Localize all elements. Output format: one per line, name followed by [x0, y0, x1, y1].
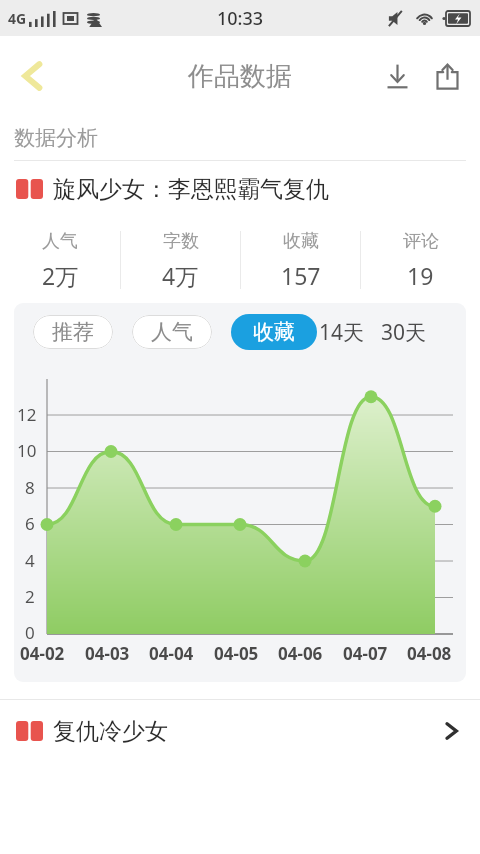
staticText: 0 [25, 621, 35, 644]
staticText: 04-06 [278, 642, 323, 665]
staticText: 04-04 [149, 642, 194, 665]
staticText: 157 [281, 260, 321, 291]
staticText: 10 [17, 439, 37, 462]
staticText: 人气 [151, 319, 193, 345]
staticText: 04-05 [214, 642, 259, 665]
button[interactable]: 复仇冷少女 [0, 700, 480, 762]
staticText: 6 [25, 512, 35, 535]
staticText: 4G [8, 9, 27, 28]
button[interactable]: 旋风少女：李恩熙霸气复仇 [0, 161, 480, 217]
button[interactable]: 人气 [0, 217, 120, 303]
button[interactable]: 推荐 [33, 315, 113, 349]
staticText: 推荐 [52, 319, 94, 345]
button[interactable]: 评论 [361, 217, 480, 303]
button[interactable]: 人气 [132, 315, 212, 349]
button[interactable]: 收藏 [231, 314, 317, 350]
staticText: 04-07 [343, 642, 388, 665]
button[interactable]: 收藏 [241, 217, 360, 303]
button[interactable]: 30天 [379, 312, 429, 353]
staticText: 7天 [269, 318, 303, 347]
staticText: 04-03 [85, 642, 130, 665]
staticText: 04-02 [20, 642, 65, 665]
staticText: 10:33 [217, 6, 264, 31]
staticText: 字数 [163, 230, 199, 253]
button[interactable]: 14天 [317, 312, 367, 353]
staticText: 19 [407, 260, 434, 291]
staticText: 4 [25, 549, 35, 572]
staticText: 4万 [162, 260, 199, 291]
staticText: 14天 [319, 318, 365, 347]
staticText: 收藏 [283, 230, 319, 253]
staticText: 收藏 [253, 319, 295, 345]
button[interactable]: 字数 [121, 217, 240, 303]
staticText: 04-08 [407, 642, 452, 665]
staticText: 评论 [403, 230, 439, 253]
staticText: 旋风少女：李恩熙霸气复仇 [53, 175, 329, 204]
staticText: 12 [17, 403, 37, 426]
button[interactable]: Back [4, 47, 62, 105]
button[interactable]: Share [422, 51, 472, 101]
staticText: 复仇冷少女 [53, 717, 168, 746]
staticText: 作品数据 [188, 60, 292, 93]
staticText: 人气 [42, 230, 78, 253]
button[interactable]: 7天 [267, 312, 305, 353]
staticText: 数据分析 [14, 125, 98, 151]
staticText: 2万 [42, 260, 79, 291]
staticText: 8 [25, 476, 35, 499]
staticText: 30天 [381, 318, 427, 347]
button[interactable]: Download [372, 51, 422, 101]
staticText: 2 [25, 585, 35, 608]
